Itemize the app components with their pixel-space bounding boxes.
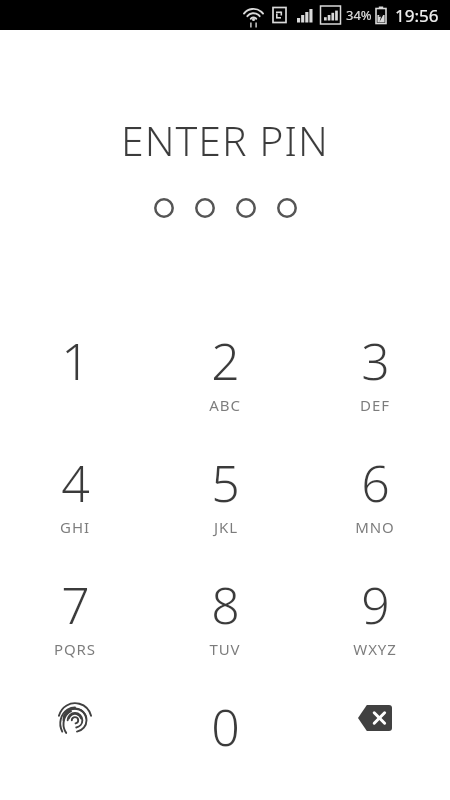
staticText: 34%: [346, 6, 372, 24]
staticText: DEF: [360, 395, 390, 415]
staticText: 5: [211, 449, 240, 517]
staticText: 0: [211, 693, 240, 761]
button[interactable]: 4: [0, 449, 150, 571]
button[interactable]: 7: [0, 571, 150, 693]
staticText: PQRS: [54, 639, 96, 659]
button[interactable]: Delete: [300, 693, 450, 800]
staticText: TUV: [209, 639, 241, 659]
button[interactable]: 0: [150, 693, 300, 800]
staticText: 9: [361, 571, 390, 639]
staticText: ENTER PIN: [121, 112, 329, 168]
staticText: 3: [361, 327, 390, 395]
staticText: 4: [61, 449, 90, 517]
staticText: ABC: [209, 395, 241, 415]
staticText: WXYZ: [353, 639, 397, 659]
staticText: 7: [61, 571, 90, 639]
staticText: 2: [211, 327, 240, 395]
button[interactable]: 1: [0, 327, 150, 449]
button[interactable]: 3: [300, 327, 450, 449]
button[interactable]: 6: [300, 449, 450, 571]
staticText: MNO: [355, 517, 395, 537]
staticText: 8: [211, 571, 240, 639]
staticText: 6: [361, 449, 390, 517]
button[interactable]: Fingerprint unlock: [0, 693, 150, 800]
button[interactable]: 8: [150, 571, 300, 693]
staticText: JKL: [214, 517, 238, 537]
button[interactable]: 9: [300, 571, 450, 693]
staticText: GHI: [60, 517, 90, 537]
button[interactable]: 5: [150, 449, 300, 571]
button[interactable]: 2: [150, 327, 300, 449]
staticText: 19:56: [395, 4, 439, 27]
staticText: 1: [61, 327, 90, 395]
